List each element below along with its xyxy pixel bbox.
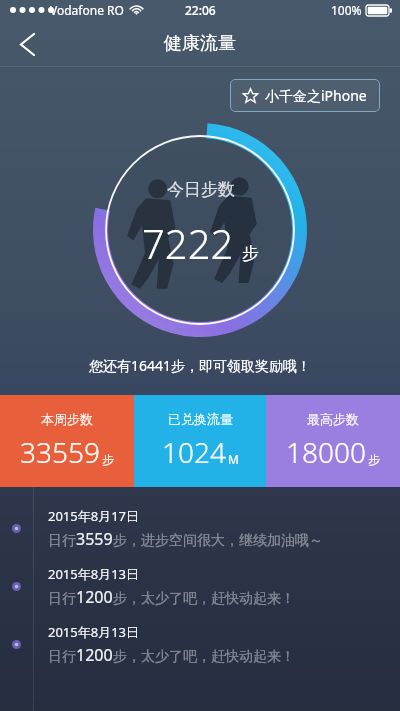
- staticText: 3559: [76, 528, 113, 550]
- staticText: 33559: [20, 433, 100, 471]
- staticText: 步: [102, 452, 114, 467]
- staticText: 已兑换流量: [168, 411, 233, 427]
- button[interactable]: 2015年8月13日: [0, 557, 400, 615]
- staticText: 小千金之iPhone: [265, 86, 367, 105]
- button[interactable]: 小千金之iPhone: [230, 79, 380, 112]
- button[interactable]: 最高步数: [266, 395, 400, 487]
- staticText: 步，太少了吧，赶快动起来！: [113, 648, 295, 666]
- staticText: 2015年8月13日: [48, 565, 140, 583]
- staticText: M: [228, 451, 239, 467]
- staticText: 日行: [48, 532, 76, 550]
- staticText: 日行: [48, 590, 76, 608]
- staticText: Vodafone RO: [50, 2, 124, 18]
- staticText: 7222: [142, 216, 234, 270]
- staticText: 最高步数: [307, 411, 359, 427]
- button[interactable]: 2015年8月13日: [0, 615, 400, 673]
- button[interactable]: 已兑换流量: [134, 395, 266, 487]
- button[interactable]: 2015年8月17日: [0, 499, 400, 557]
- staticText: 1200: [76, 586, 113, 608]
- staticText: 日行: [48, 648, 76, 666]
- staticText: 2015年8月17日: [48, 507, 140, 525]
- staticText: 1200: [76, 644, 113, 666]
- staticText: 18000: [286, 433, 366, 471]
- staticText: 步: [242, 243, 259, 264]
- button[interactable]: Back: [5, 22, 49, 66]
- staticText: 1024: [162, 433, 226, 471]
- button[interactable]: 本周步数: [0, 395, 134, 487]
- staticText: 健康流量: [164, 32, 236, 55]
- staticText: 步，太少了吧，赶快动起来！: [113, 590, 295, 608]
- staticText: 今日步数: [167, 179, 235, 200]
- staticText: 步，进步空间很大，继续加油哦～: [113, 532, 323, 550]
- staticText: 本周步数: [41, 411, 93, 427]
- staticText: 100%: [331, 2, 362, 18]
- staticText: 您还有16441步，即可领取奖励哦！: [0, 356, 400, 375]
- staticText: 2015年8月13日: [48, 623, 140, 641]
- staticText: 22:06: [185, 2, 216, 18]
- staticText: 步: [368, 452, 380, 467]
